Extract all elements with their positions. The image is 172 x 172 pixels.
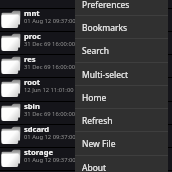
staticText: sbin xyxy=(24,101,40,111)
button[interactable]: mnt xyxy=(0,9,172,32)
staticText: sdcard xyxy=(24,124,50,134)
staticText: Refresh xyxy=(82,115,113,127)
staticText: proc xyxy=(24,31,41,41)
staticText: Home xyxy=(82,92,107,104)
staticText: 01 Aug 12 09:37:00 xyxy=(24,17,76,25)
button[interactable]: sdcard xyxy=(0,125,172,148)
button[interactable]: Refresh xyxy=(75,109,168,132)
staticText: Search xyxy=(82,45,109,57)
staticText: About xyxy=(82,162,107,172)
staticText: 01 Aug 12 09:37:00 xyxy=(24,133,76,141)
staticText: 01 Aug 12 09:37:00 xyxy=(24,156,76,164)
staticText: res xyxy=(24,54,36,64)
staticText: 31 Dec 69 16:00:00 xyxy=(24,110,76,118)
staticText: root xyxy=(24,77,41,87)
button[interactable]: storage xyxy=(0,148,172,171)
staticText: 31 Dec 69 16:00:00 xyxy=(24,63,76,71)
staticText: storage xyxy=(24,147,53,157)
button[interactable]: Search xyxy=(75,39,168,62)
button[interactable]: Bookmarks xyxy=(75,16,168,39)
staticText: 12 Jun 12 11:01:00 xyxy=(24,86,74,94)
staticText: Preferences xyxy=(82,0,130,11)
button[interactable]: New File xyxy=(75,132,168,155)
button[interactable]: root xyxy=(0,78,172,101)
button[interactable]: res xyxy=(0,55,172,78)
staticText: Bookmarks xyxy=(82,22,128,34)
button[interactable]: Preferences xyxy=(75,0,168,16)
staticText: New File xyxy=(82,138,116,150)
button[interactable]: Multi-select xyxy=(75,63,168,86)
staticText: 31 Dec 69 16:00:00 xyxy=(24,40,76,48)
button[interactable] xyxy=(0,0,172,8)
staticText: Multi-select xyxy=(82,69,129,81)
button[interactable]: sbin xyxy=(0,102,172,125)
staticText: mnt xyxy=(24,8,40,18)
button[interactable]: Home xyxy=(75,86,168,109)
button[interactable]: About xyxy=(75,156,168,172)
button[interactable]: proc xyxy=(0,32,172,55)
